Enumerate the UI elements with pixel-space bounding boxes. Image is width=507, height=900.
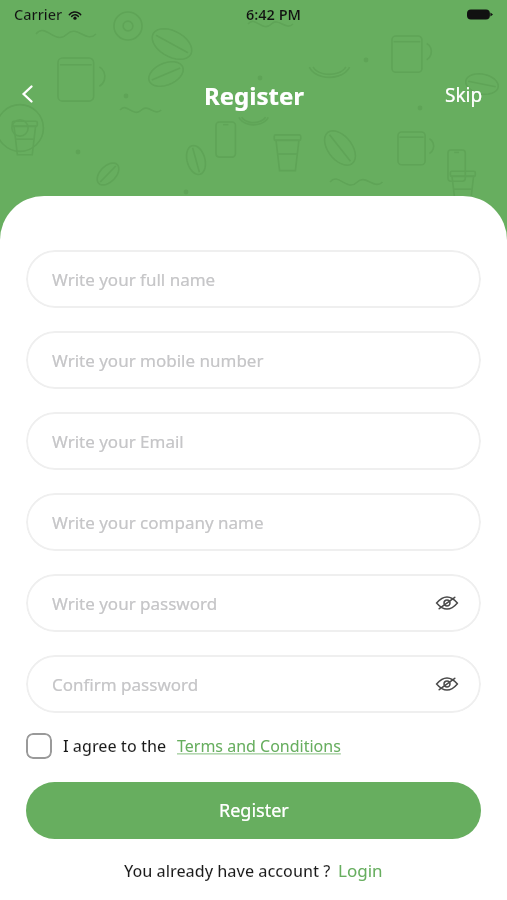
button[interactable]: Write your full name [26, 250, 481, 308]
staticText: Carrier [14, 4, 63, 24]
button[interactable]: Register [26, 782, 481, 839]
button[interactable]: Write your mobile number [26, 331, 481, 389]
button[interactable]: Back [4, 70, 52, 118]
button[interactable]: I agree to the terms checkbox [26, 733, 52, 759]
staticText: Skip [445, 82, 483, 108]
button[interactable]: Terms and Conditions [177, 735, 341, 757]
staticText: Confirm password [52, 673, 199, 696]
staticText: Write your mobile number [52, 349, 264, 372]
staticText: Register [219, 798, 289, 823]
button[interactable]: Write your password [26, 574, 481, 632]
staticText: Write your Email [52, 430, 184, 453]
staticText: Terms and Conditions [177, 735, 341, 757]
staticText: Write your company name [52, 511, 264, 534]
staticText: Register [204, 79, 304, 112]
staticText: Write your password [52, 592, 218, 615]
staticText: 6:42 PM [246, 4, 302, 24]
staticText: I agree to the [63, 735, 167, 757]
staticText: Write your full name [52, 268, 216, 291]
button[interactable]: Skip [421, 72, 507, 118]
staticText: Login [338, 859, 383, 882]
button[interactable]: Write your company name [26, 493, 481, 551]
button[interactable]: Confirm password [26, 655, 481, 713]
staticText: You already have account ? [124, 860, 331, 882]
button[interactable]: Login [338, 859, 383, 882]
button[interactable]: Show password [433, 589, 461, 617]
button[interactable]: Show password [433, 670, 461, 698]
button[interactable]: Write your Email [26, 412, 481, 470]
